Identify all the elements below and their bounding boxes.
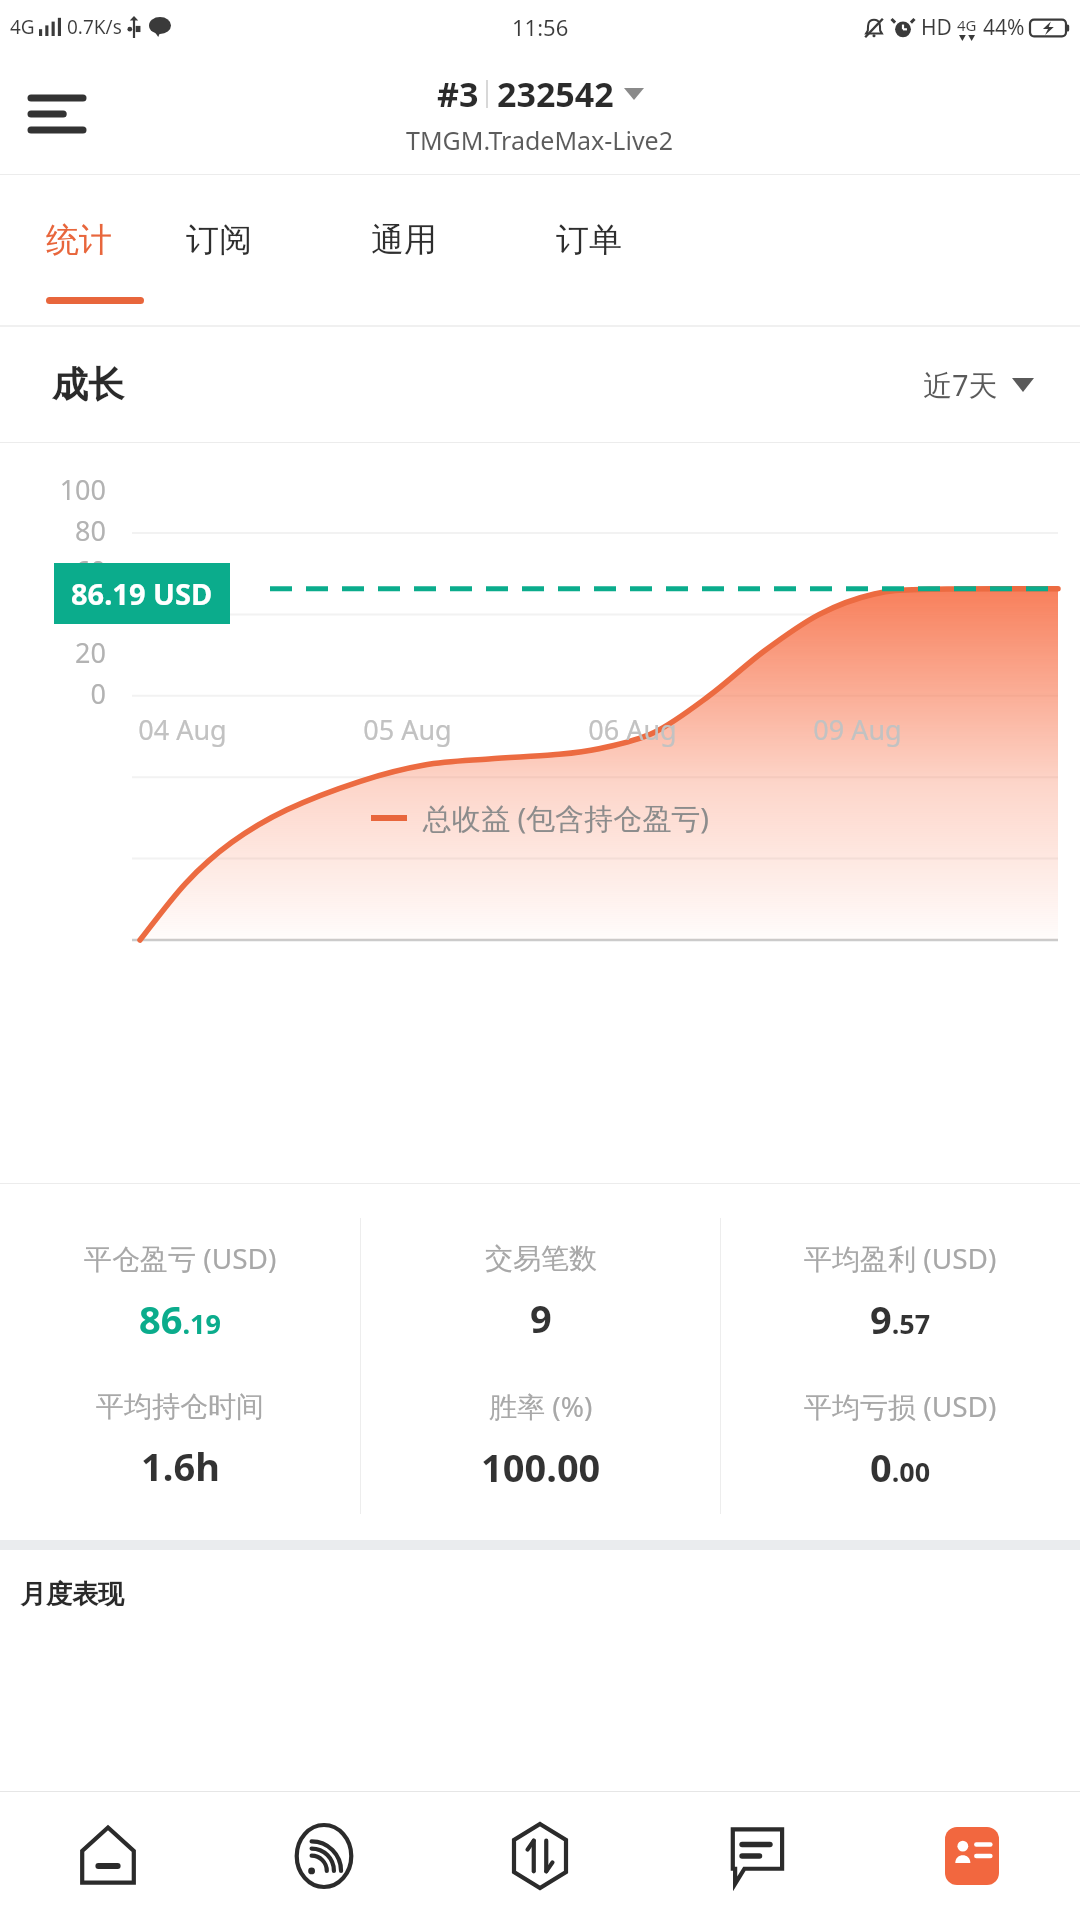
button[interactable]: Trade [432,1792,648,1920]
staticText: 平均亏损 (USD) [804,1387,997,1425]
staticText: 0 [0,675,106,712]
button[interactable]: Menu [24,81,90,147]
staticText: 232542 [497,71,614,117]
staticText: 80 [0,512,106,549]
staticText: 9 [530,1292,552,1344]
button[interactable]: #3 [406,71,674,157]
button[interactable]: 通用 [371,175,556,325]
staticText: HD [921,13,952,42]
button[interactable]: Home [0,1792,216,1920]
staticText: 平仓盈亏 (USD) [84,1239,277,1277]
staticText: 4G [10,14,35,40]
staticText: 44% [983,13,1025,42]
staticText: 成长 [52,362,124,407]
button[interactable]: 订阅 [186,175,371,325]
staticText: 4G [957,15,977,35]
staticText: 订阅 [186,219,252,261]
button[interactable]: 平均亏损 (USD) [721,1366,1080,1514]
staticText: 100 [0,471,106,508]
staticText: 0.00 [870,1441,931,1493]
button[interactable]: Messages [648,1792,864,1920]
staticText: 06 Aug [520,711,745,748]
staticText: 胜率 (%) [489,1387,593,1425]
staticText: 平均盈利 (USD) [804,1239,997,1277]
staticText: 平均持仓时间 [96,1389,264,1424]
staticText: 1.6h [141,1440,220,1492]
staticText: 100.00 [481,1441,601,1493]
staticText: 月度表现 [20,1578,124,1611]
staticText: TMGM.TradeMax-Live2 [406,123,674,157]
button[interactable]: 平均盈利 (USD) [721,1218,1080,1366]
staticText: 05 Aug [295,711,520,748]
staticText: 交易笔数 [485,1241,597,1276]
button[interactable]: 交易笔数 [361,1218,720,1366]
staticText: 近7天 [923,365,998,405]
button[interactable]: Profile [864,1792,1080,1920]
staticText: 60 [0,552,106,589]
button[interactable]: 平仓盈亏 (USD) [0,1218,360,1366]
button[interactable]: 胜率 (%) [361,1366,720,1514]
button[interactable]: 订单 [556,175,741,325]
staticText: 订单 [556,219,622,261]
staticText: 11:56 [512,12,569,42]
staticText: 统计 [46,219,112,261]
staticText: 86.19 USD [71,574,213,613]
button[interactable]: 统计 [46,175,186,325]
staticText: 总收益 (包含持仓盈亏) [423,798,709,838]
staticText: 9.57 [870,1293,931,1345]
staticText: 20 [0,634,106,671]
staticText: 0.7K/s [67,14,122,40]
staticText: 09 Aug [745,711,970,748]
staticText: 通用 [371,219,437,261]
button[interactable]: Signals [216,1792,432,1920]
staticText: #3 [437,71,479,117]
button[interactable]: 平均持仓时间 [0,1366,360,1514]
staticText: 04 Aug [70,711,295,748]
staticText: 86.19 [139,1293,221,1345]
staticText: 40 [0,593,106,630]
button[interactable]: 近7天 [923,365,1034,405]
